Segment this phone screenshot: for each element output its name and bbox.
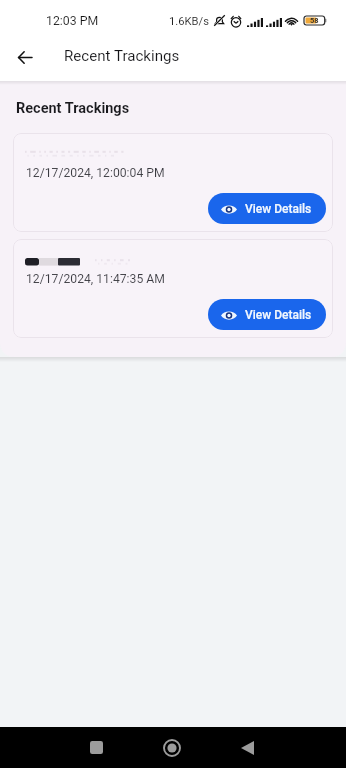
button[interactable]: 12/17/2024, 11:47:35 AM <box>13 239 333 338</box>
staticText: Recent Trackings <box>16 100 130 117</box>
button[interactable]: Home <box>134 727 210 768</box>
button[interactable]: View Details <box>208 193 326 224</box>
button[interactable]: Back <box>209 727 285 768</box>
staticText: 58 <box>310 16 319 25</box>
staticText: Recent Trackings <box>64 47 180 65</box>
button[interactable]: View Details <box>208 299 326 330</box>
staticText: 12/17/2024, 12:00:04 PM <box>26 166 165 180</box>
button[interactable]: Recent apps <box>58 727 134 768</box>
staticText: View Details <box>245 308 312 322</box>
staticText: View Details <box>245 202 312 216</box>
staticText: 12/17/2024, 11:47:35 AM <box>26 272 165 286</box>
staticText: 12:03 PM <box>46 14 99 28</box>
button[interactable]: 12/17/2024, 12:00:04 PM <box>13 133 333 232</box>
button[interactable]: Back <box>8 41 41 74</box>
staticText: 1.6KB/s <box>169 15 209 28</box>
